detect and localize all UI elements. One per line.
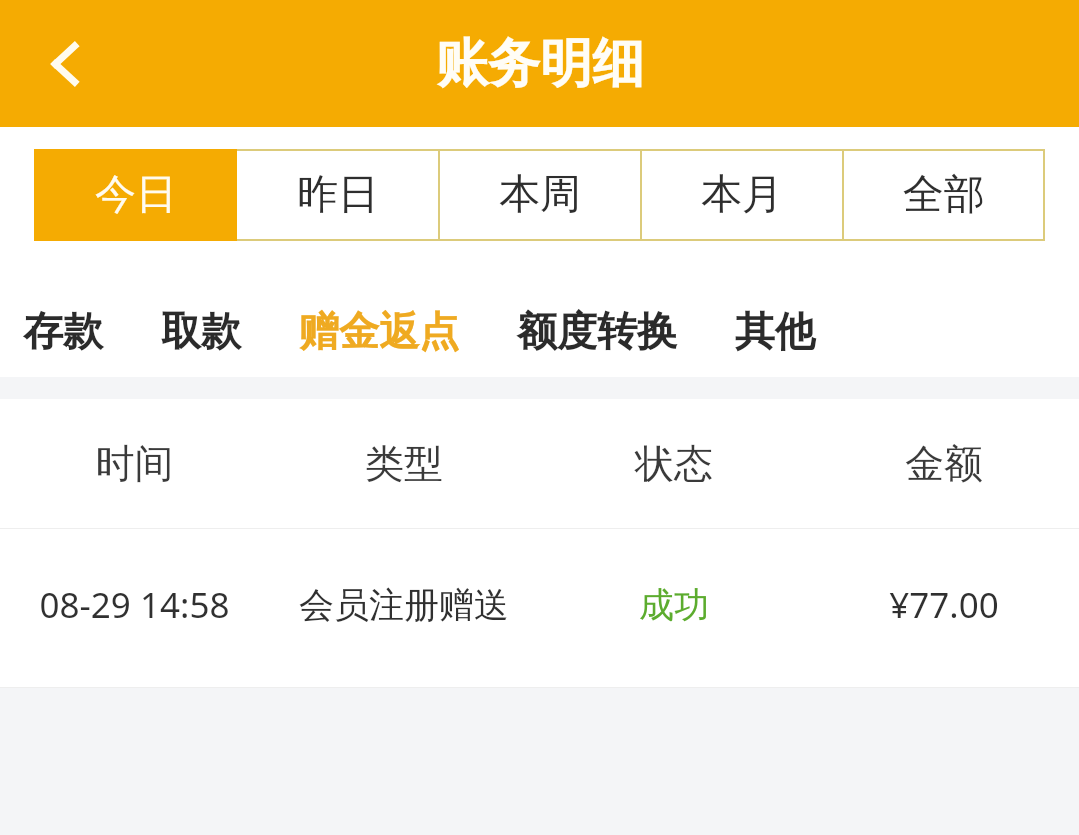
button[interactable]: 全部 bbox=[844, 151, 1043, 239]
button[interactable]: 其他 bbox=[735, 292, 815, 370]
staticText: ¥77.00 bbox=[809, 581, 1079, 629]
button[interactable]: 本月 bbox=[642, 151, 842, 239]
staticText: 昨日 bbox=[297, 169, 379, 221]
staticText: 存款 bbox=[23, 306, 103, 356]
staticText: 其他 bbox=[735, 306, 815, 356]
staticText: 额度转换 bbox=[517, 306, 677, 356]
staticText: 全部 bbox=[903, 169, 985, 221]
staticText: 赠金返点 bbox=[299, 306, 459, 356]
staticText: 状态 bbox=[539, 439, 809, 488]
staticText: 本周 bbox=[499, 169, 581, 221]
button[interactable]: 额度转换 bbox=[517, 292, 677, 370]
button[interactable]: 存款 bbox=[23, 292, 103, 370]
staticText: 本月 bbox=[701, 169, 783, 221]
button[interactable]: 今日 bbox=[34, 149, 237, 241]
staticText: 取款 bbox=[161, 306, 241, 356]
staticText: 08-29 14:58 bbox=[0, 581, 269, 629]
staticText: 金额 bbox=[809, 439, 1079, 488]
staticText: 类型 bbox=[269, 439, 539, 488]
button[interactable]: 08-29 14:58 bbox=[0, 529, 1079, 687]
button[interactable]: 本周 bbox=[440, 151, 640, 239]
button[interactable]: 赠金返点 bbox=[299, 292, 459, 370]
staticText: 成功 bbox=[539, 583, 809, 627]
button[interactable]: Back bbox=[29, 28, 101, 100]
staticText: 时间 bbox=[0, 439, 269, 488]
button[interactable]: 取款 bbox=[161, 292, 241, 370]
staticText: 今日 bbox=[95, 169, 177, 221]
button[interactable]: 昨日 bbox=[237, 151, 438, 239]
staticText: 账务明细 bbox=[436, 31, 644, 97]
staticText: 会员注册赠送 bbox=[269, 583, 539, 627]
